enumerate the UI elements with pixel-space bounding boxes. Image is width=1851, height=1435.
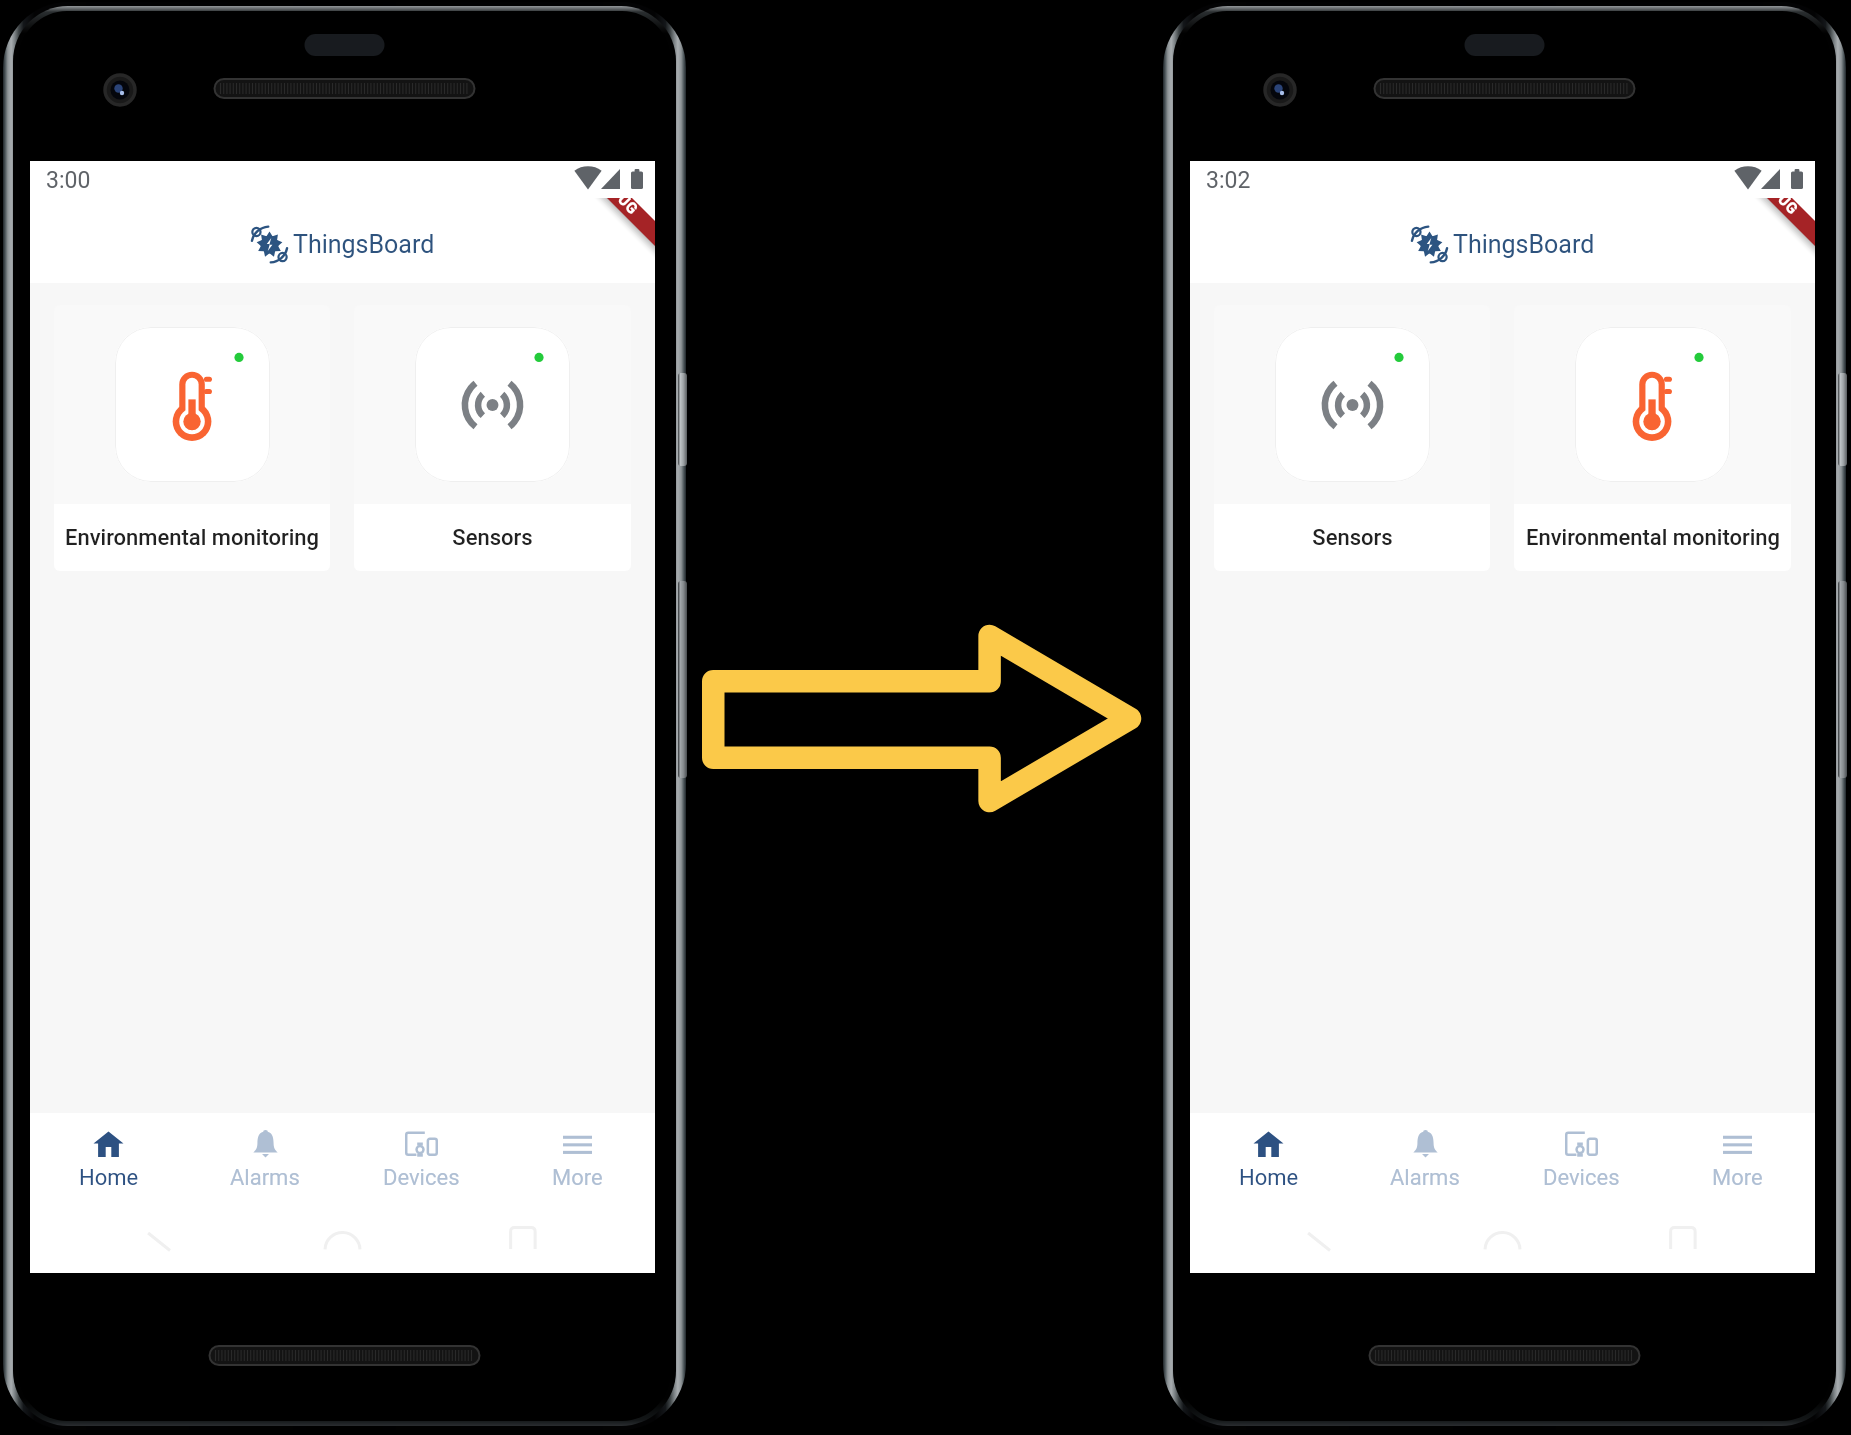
button[interactable]: Open Sensors dashboard xyxy=(1214,305,1490,571)
staticText: Home xyxy=(79,1165,139,1191)
button[interactable]: Open Sensors dashboard xyxy=(1275,327,1430,482)
staticText: ThingsBoard xyxy=(1453,230,1595,259)
staticText: 3:00 xyxy=(46,167,91,194)
button[interactable]: Devices xyxy=(343,1113,499,1209)
staticText: Devices xyxy=(383,1165,460,1191)
staticText: Alarms xyxy=(230,1165,300,1191)
button[interactable]: More xyxy=(499,1113,655,1209)
staticText: ThingsBoard xyxy=(293,230,435,259)
button[interactable]: More xyxy=(1659,1113,1815,1209)
staticText: Environmental monitoring xyxy=(1526,525,1780,551)
staticText: Home xyxy=(1239,1165,1299,1191)
button[interactable]: Open Environmental monitoring dashboard xyxy=(54,305,330,571)
button[interactable]: Open Sensors dashboard xyxy=(354,305,631,571)
staticText: More xyxy=(552,1165,603,1191)
button[interactable]: Open Environmental monitoring dashboard xyxy=(1575,327,1730,482)
button[interactable]: Open Sensors dashboard xyxy=(415,327,570,482)
staticText: Environmental monitoring xyxy=(65,525,319,551)
button[interactable]: Alarms xyxy=(187,1113,343,1209)
staticText: DEBUG xyxy=(1753,170,1802,219)
staticText: Sensors xyxy=(1312,525,1393,551)
staticText: DEBUG xyxy=(593,170,642,219)
button[interactable]: Alarms xyxy=(1347,1113,1503,1209)
button[interactable]: Home xyxy=(30,1113,187,1209)
button[interactable]: Home xyxy=(1190,1113,1347,1209)
staticText: Alarms xyxy=(1390,1165,1460,1191)
staticText: 3:02 xyxy=(1206,167,1251,194)
button[interactable]: Open Environmental monitoring dashboard xyxy=(115,327,270,482)
staticText: Devices xyxy=(1543,1165,1620,1191)
button[interactable]: Open Environmental monitoring dashboard xyxy=(1514,305,1791,571)
staticText: Sensors xyxy=(452,525,533,551)
button[interactable]: Devices xyxy=(1503,1113,1659,1209)
staticText: More xyxy=(1712,1165,1763,1191)
